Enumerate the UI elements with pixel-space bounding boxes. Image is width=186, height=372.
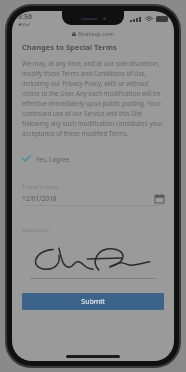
- button[interactable]: Signature: [22, 242, 164, 276]
- staticText: Submit: [81, 297, 105, 307]
- button[interactable]: Submit: [22, 293, 164, 310]
- staticText: finalsup.com: [78, 30, 115, 38]
- staticText: Today's Date: [22, 183, 58, 191]
- staticText: We may, at any time, and at our sole dis…: [22, 59, 164, 138]
- staticText: Changes to Special Terms: [22, 42, 117, 52]
- staticText: Mail: [22, 22, 30, 27]
- staticText: 12/01/2018: [22, 194, 57, 203]
- other: Pick date: [155, 194, 164, 203]
- button[interactable]: Yes, I agree: [22, 152, 164, 165]
- button[interactable]: 12/01/2018: [22, 194, 164, 203]
- staticText: Signature: [22, 226, 50, 234]
- staticText: Yes, I agree: [36, 155, 70, 163]
- staticText: 3:56: [18, 12, 32, 22]
